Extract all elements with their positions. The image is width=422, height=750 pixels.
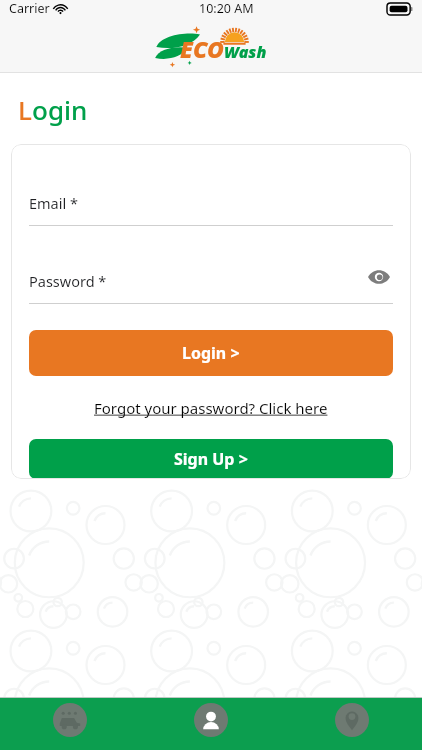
button[interactable]: Show password [365,263,393,291]
staticText: Password * [29,271,107,291]
staticText: Login > [182,342,240,364]
staticText: L [18,92,32,127]
staticText: Sign Up > [174,448,248,470]
staticText: ogin [32,92,88,127]
staticText: Wash [224,41,267,63]
button[interactable]: Sign Up > [29,439,393,479]
staticText: Email * [29,193,78,213]
button[interactable]: Profile [140,698,281,750]
button[interactable]: Forgot your password? Click here [29,398,393,418]
button[interactable]: Wash services [0,698,140,750]
staticText: 10:20 AM [199,0,254,17]
button[interactable]: Password * [29,271,393,304]
staticText: ECO [180,33,224,64]
button[interactable]: Email * [29,193,393,226]
staticText: Carrier [9,0,50,17]
button[interactable]: Login > [29,330,393,376]
button[interactable]: Locations [281,698,422,750]
staticText: Forgot your password? Click here [94,398,328,418]
